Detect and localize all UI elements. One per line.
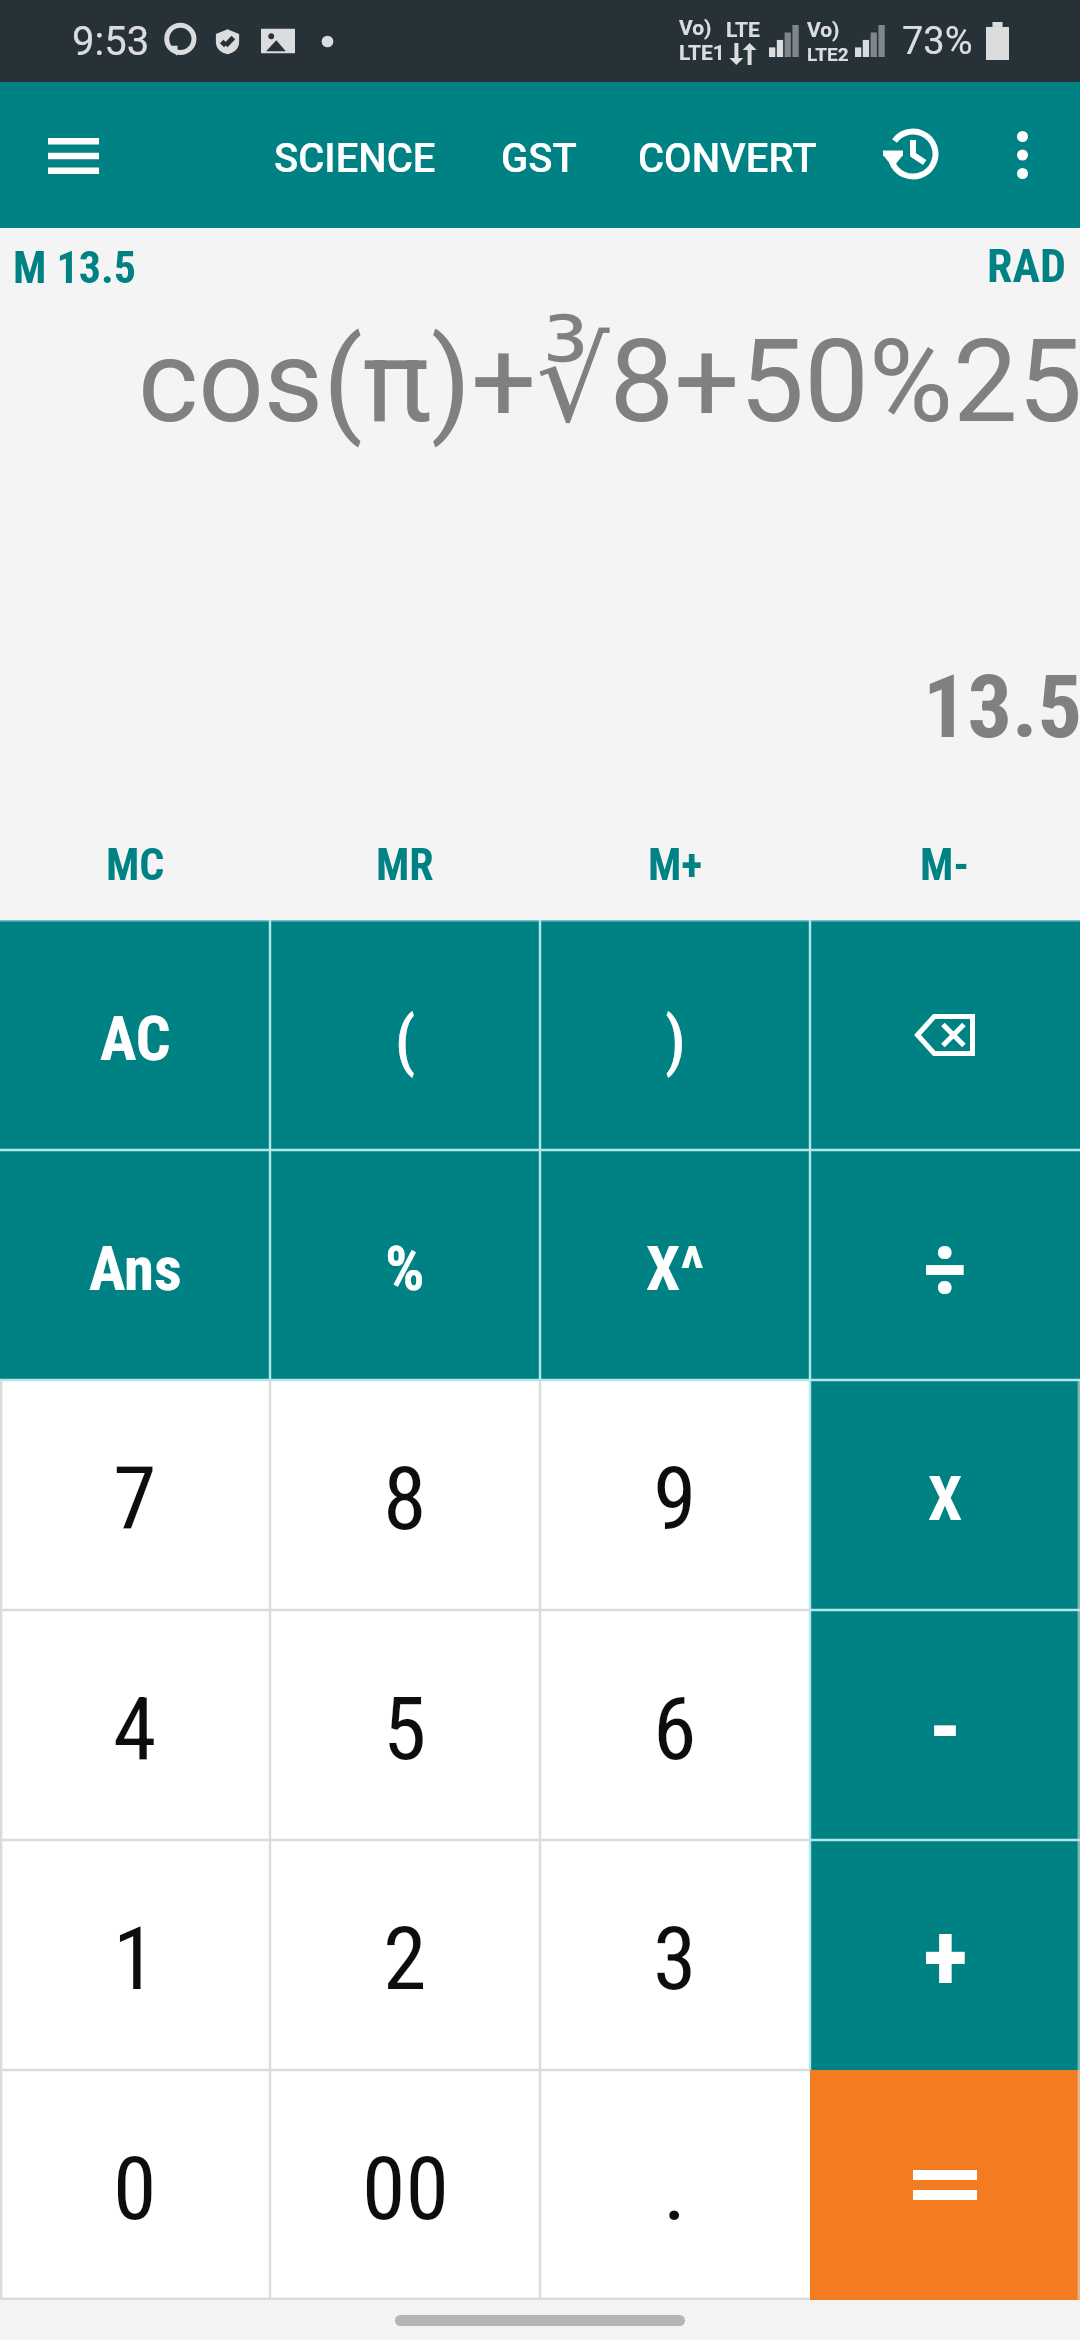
staticText: Vo) [679, 16, 712, 41]
button[interactable]: Ans [0, 1150, 270, 1380]
button[interactable]: AC [0, 920, 270, 1150]
staticText: 1 [113, 1907, 157, 2010]
button[interactable]: 3 [540, 1840, 810, 2070]
staticText: 00 [362, 2137, 449, 2240]
staticText: LTE [726, 18, 760, 43]
button[interactable]: 8 [270, 1380, 540, 1610]
staticText: ) [665, 1004, 686, 1079]
staticText: ( [395, 1004, 416, 1079]
staticText: 9 [653, 1447, 697, 1550]
staticText: 6 [653, 1677, 697, 1780]
staticText: + [923, 1903, 968, 2013]
button[interactable]: 7 [0, 1380, 270, 1610]
staticText: 0 [113, 2137, 157, 2240]
button[interactable]: Equals [810, 2070, 1080, 2300]
button[interactable]: M+ [540, 813, 810, 920]
button[interactable]: ÷ [810, 1150, 1080, 1380]
staticText: % [385, 1232, 425, 1305]
staticText: MC [106, 839, 165, 891]
button[interactable]: CONVERT [632, 82, 823, 228]
button[interactable]: 4 [0, 1610, 270, 1840]
button[interactable]: + [810, 1840, 1080, 2070]
staticText: LTE1 [679, 41, 725, 66]
other: Backspace [915, 1014, 975, 1056]
staticText: 13.5 [923, 655, 1080, 758]
staticText: Ans [89, 1233, 182, 1304]
button[interactable]: 2 [270, 1840, 540, 2070]
button[interactable]: 0 [0, 2070, 270, 2300]
button[interactable]: . [540, 2070, 810, 2300]
staticText: M+ [648, 839, 703, 891]
button[interactable]: 6 [540, 1610, 810, 1840]
button[interactable]: MR [270, 813, 540, 920]
button[interactable]: X [810, 1380, 1080, 1610]
button[interactable]: Home [395, 2315, 685, 2326]
staticText: 5 [383, 1677, 427, 1780]
staticText: M 13.5 [13, 242, 136, 294]
button[interactable]: % [270, 1150, 540, 1380]
staticText: SCIENCE [274, 135, 436, 182]
button[interactable]: 5 [270, 1610, 540, 1840]
staticText: 9:53 [72, 18, 150, 65]
button[interactable]: GST [495, 82, 583, 228]
staticText: - [929, 1676, 962, 1781]
staticText: 2 [383, 1907, 427, 2010]
staticText: X [928, 1463, 963, 1534]
staticText: LTE2 [807, 43, 849, 65]
staticText: . [663, 2137, 687, 2240]
staticText: 3 [653, 1907, 697, 2010]
button[interactable]: History [853, 82, 965, 228]
staticText: GST [501, 135, 577, 182]
staticText: MR [376, 839, 434, 891]
other: Equals [913, 2170, 977, 2200]
button[interactable]: Backspace [810, 920, 1080, 1150]
staticText: cos(π)+∛8+50%25 [138, 314, 1080, 449]
button[interactable]: Navigation menu [8, 82, 138, 228]
button[interactable]: SCIENCE [268, 82, 442, 228]
button[interactable]: X^ [540, 1150, 810, 1380]
button[interactable]: - [810, 1610, 1080, 1840]
staticText: 4 [113, 1677, 157, 1780]
staticText: CONVERT [638, 135, 817, 182]
staticText: X^ [646, 1233, 704, 1304]
button[interactable]: M- [810, 813, 1080, 920]
button[interactable]: ( [270, 920, 540, 1150]
button[interactable]: 00 [270, 2070, 540, 2300]
staticText: 73% [902, 19, 973, 64]
button[interactable]: 1 [0, 1840, 270, 2070]
button[interactable]: MC [0, 813, 270, 920]
staticText: Vo) [807, 18, 840, 43]
staticText: ÷ [923, 1217, 967, 1320]
staticText: AC [100, 1003, 171, 1074]
staticText: 7 [113, 1447, 157, 1550]
button[interactable]: More options [970, 82, 1074, 228]
staticText: M- [920, 839, 970, 891]
button[interactable]: 9 [540, 1380, 810, 1610]
button[interactable]: ) [540, 920, 810, 1150]
staticText: 8 [383, 1447, 427, 1550]
staticText: RAD [987, 239, 1066, 293]
